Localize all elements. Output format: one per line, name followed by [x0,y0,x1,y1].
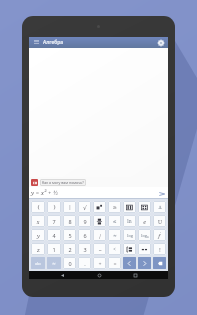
button[interactable]: log [123,229,136,241]
staticText: 2 [68,246,72,253]
staticText: ' [160,231,161,236]
button[interactable]: Settings [156,38,165,47]
staticText: = [113,260,117,267]
button[interactable]: x [31,215,45,227]
button[interactable]: 3 [78,243,91,255]
button[interactable]: ≤ [108,215,121,227]
staticText: 6 [83,232,87,239]
button[interactable]: ln [123,215,136,227]
button[interactable]: ∆ [153,201,166,213]
button[interactable]: 2 [63,243,76,255]
button[interactable]: right [138,257,151,269]
staticText: 8 [68,218,72,225]
staticText: 1 [52,246,56,253]
staticText: x [36,218,40,225]
staticText: 4 [52,232,56,239]
button[interactable]: ≥ [108,201,121,213]
button[interactable]: ) [47,201,61,213]
staticText: abc [35,261,41,266]
button[interactable]: frac [93,215,106,227]
button[interactable]: 9 [78,215,91,227]
button[interactable]: Как я могу вам помочь? [42,179,84,186]
staticText: y = x² + ½ [31,189,59,197]
staticText: ! [159,246,161,253]
button[interactable]: ≈ [47,257,61,269]
button[interactable]: Home [95,271,103,279]
staticText: Алгебра [43,39,64,46]
staticText: | [68,203,72,211]
button[interactable]: ≈ [108,229,121,241]
staticText: ln [127,218,132,224]
button[interactable]: < [108,243,121,255]
staticText: 7 [52,218,56,225]
button[interactable]: log [138,229,151,241]
button[interactable]: = [108,257,121,269]
button[interactable]: ! [153,243,166,255]
button[interactable]: f [153,229,166,241]
staticText: √ [83,204,87,211]
staticText: 9 [83,218,87,225]
staticText: ( [37,203,40,211]
staticText: ≥ [112,204,117,210]
button[interactable]: pow [93,201,106,213]
button[interactable]: App icon [31,179,38,186]
staticText: − [98,246,102,253]
staticText: a [147,235,149,239]
button[interactable]: + [93,257,106,269]
button[interactable]: 6 [78,229,91,241]
staticText: ∆ [158,205,162,210]
staticText: log [141,233,147,238]
staticText: / [99,232,101,239]
button[interactable]: matrix3 [138,201,151,213]
staticText: . [84,260,86,267]
staticText: 0 [68,260,72,267]
button[interactable]: / [93,229,106,241]
button[interactable]: matrix2 [123,201,136,213]
button[interactable]: Back [58,271,66,279]
staticText: f [158,232,160,239]
staticText: ≈ [113,233,117,238]
button[interactable]: dots [138,243,151,255]
button[interactable]: √ [78,201,91,213]
staticText: + [98,260,102,267]
button[interactable]: ( [31,201,45,213]
staticText: e [143,218,146,225]
staticText: Как я могу вам помочь? [42,180,84,185]
staticText: 3 [83,246,87,253]
staticText: ) [53,203,56,211]
button[interactable]: | [63,201,76,213]
button[interactable]: del [153,257,166,269]
staticText: U [158,218,162,225]
button[interactable]: y [31,229,45,241]
staticText: log [127,233,133,238]
button[interactable]: Submit [157,189,166,198]
button[interactable]: Recents [131,271,139,279]
button[interactable]: U [153,215,166,227]
button[interactable]: 1 [47,243,61,255]
button[interactable]: 4 [47,229,61,241]
button[interactable]: left [123,257,136,269]
button[interactable]: Menu [32,38,41,47]
button[interactable]: e [138,215,151,227]
staticText: 5 [68,232,72,239]
button[interactable]: 7 [47,215,61,227]
button[interactable]: 8 [63,215,76,227]
button[interactable]: − [93,243,106,255]
button[interactable]: 0 [63,257,76,269]
button[interactable]: 5 [63,229,76,241]
staticText: ≈ [52,261,56,266]
button[interactable]: sys [123,243,136,255]
button[interactable]: abc [31,257,45,269]
staticText: y [37,232,40,239]
button[interactable]: z [31,243,45,255]
staticText: z [37,246,40,253]
staticText: ≤ [113,219,117,224]
button[interactable]: . [78,257,91,269]
staticText: < [113,246,116,252]
